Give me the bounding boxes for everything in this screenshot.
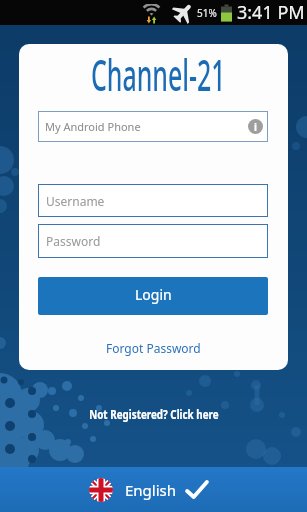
button[interactable]: Login [38,277,268,315]
staticText: 51% [197,6,217,20]
button[interactable]: Username [38,184,268,217]
staticText: 3:41 PM [237,0,305,25]
button[interactable]: Forgot Password [102,336,205,360]
button[interactable]: My Android Phone [38,111,268,142]
button[interactable]: Not Registered? Click here [71,402,237,426]
staticText: English [125,480,177,500]
staticText: My Android Phone [45,119,141,134]
staticText: i [254,120,257,134]
staticText: Password [46,233,101,249]
staticText: Forgot Password [106,340,201,356]
staticText: Channel-21 [91,45,226,104]
staticText: Login [135,285,172,304]
button[interactable]: Password [38,224,268,258]
staticText: Not Registered? Click here [89,406,219,422]
staticText: Username [46,193,105,209]
button[interactable]: English [0,467,307,512]
